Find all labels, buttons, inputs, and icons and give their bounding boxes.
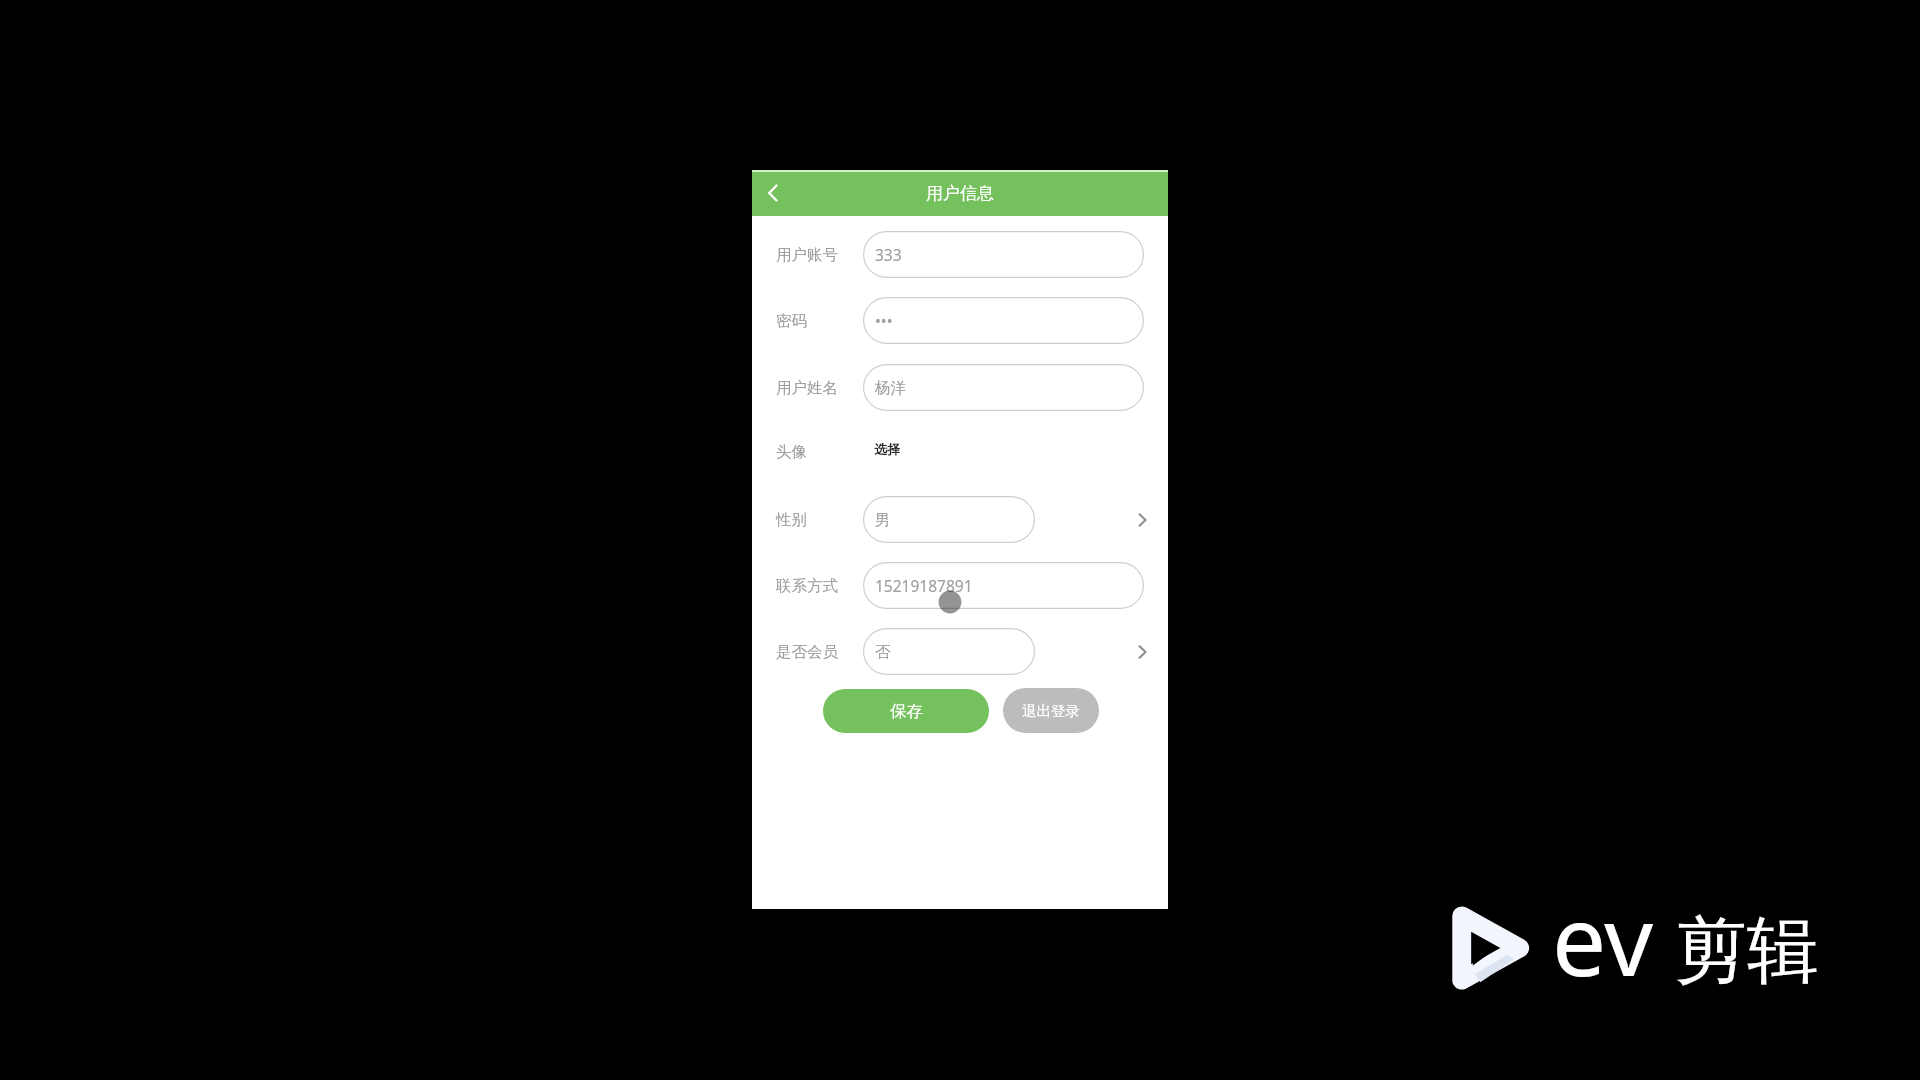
staticText: 男 (875, 510, 891, 530)
staticText: ev (1552, 873, 1653, 1004)
staticText: 杨洋 (875, 378, 906, 398)
button[interactable]: Open 性别 picker (1127, 505, 1157, 535)
button[interactable]: 333 (863, 231, 1144, 278)
button[interactable]: 头像 (752, 430, 1168, 477)
staticText: 退出登录 (1022, 702, 1080, 720)
staticText: 否 (875, 642, 891, 662)
button[interactable]: ••• (863, 297, 1144, 344)
button[interactable]: 男 (863, 496, 1035, 543)
button[interactable]: 退出登录 (1003, 688, 1099, 733)
staticText: 头像 (776, 442, 807, 462)
staticText: 性别 (776, 510, 807, 530)
staticText: 用户信息 (926, 183, 994, 204)
staticText: 剪辑 (1675, 906, 1819, 997)
staticText: 333 (875, 244, 902, 265)
staticText: 联系方式 (776, 576, 838, 596)
button[interactable]: 否 (863, 628, 1035, 675)
button[interactable]: 15219187891 (863, 562, 1144, 609)
button[interactable]: Back (752, 170, 794, 216)
staticText: 用户姓名 (776, 378, 838, 398)
button[interactable]: 保存 (823, 689, 989, 733)
staticText: 15219187891 (875, 575, 973, 596)
staticText: 是否会员 (776, 642, 838, 662)
staticText: ••• (875, 310, 893, 331)
button[interactable]: Open 是否会员 picker (1127, 637, 1157, 667)
button[interactable]: 杨洋 (863, 364, 1144, 411)
staticText: 选择 (874, 441, 900, 457)
staticText: 用户账号 (776, 245, 838, 265)
staticText: 密码 (776, 311, 807, 331)
staticText: 保存 (890, 701, 923, 722)
